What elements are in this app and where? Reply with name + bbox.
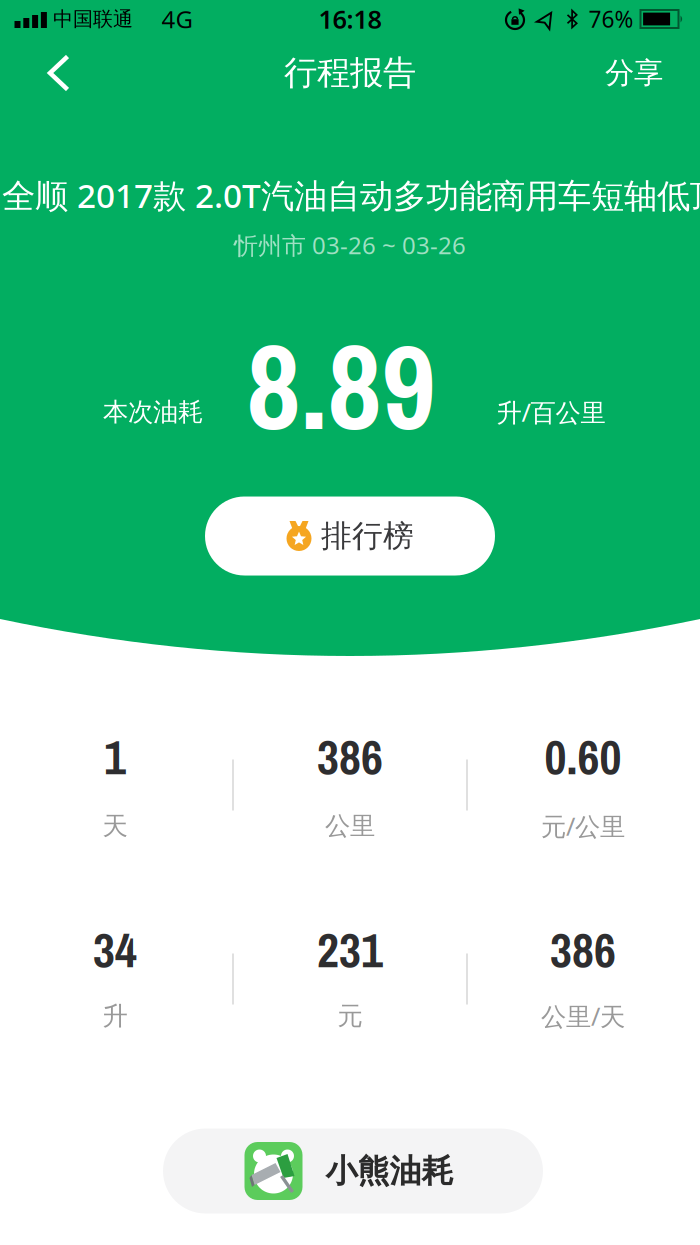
staticText: 1 [104,725,126,789]
staticText: 元/公里 [541,809,625,843]
staticText: 0.60 [544,725,621,789]
button[interactable]: 分享 [595,45,673,101]
staticText: 公里 [325,810,375,841]
staticText: 76% [588,4,633,34]
button[interactable]: Back [36,42,82,103]
staticText: 231 [317,918,383,982]
staticText: 升 [102,1000,127,1031]
staticText: 忻州市 03-26 ~ 03-26 [234,229,466,261]
staticText: 排行榜 [321,517,414,555]
staticText: 全顺 2017款 2.0T汽油自动多功能商用车短轴低顶 [2,173,700,217]
staticText: 本次油耗 [103,396,203,427]
staticText: 小熊油耗 [325,1151,453,1191]
staticText: 中国联通 [53,7,133,31]
staticText: 公里/天 [541,999,625,1033]
staticText: 行程报告 [284,52,416,93]
button[interactable]: 小熊油耗 [163,1128,543,1213]
staticText: 元 [337,1000,362,1031]
staticText: 16:18 [318,2,381,36]
staticText: 386 [550,918,616,982]
staticText: 8.89 [246,306,435,466]
staticText: 分享 [605,55,663,91]
staticText: 4G [161,3,192,35]
button[interactable]: 排行榜 [205,496,495,575]
staticText: 386 [317,725,383,789]
staticText: 升/百公里 [496,395,605,429]
staticText: 34 [93,918,137,982]
staticText: 天 [102,810,127,841]
